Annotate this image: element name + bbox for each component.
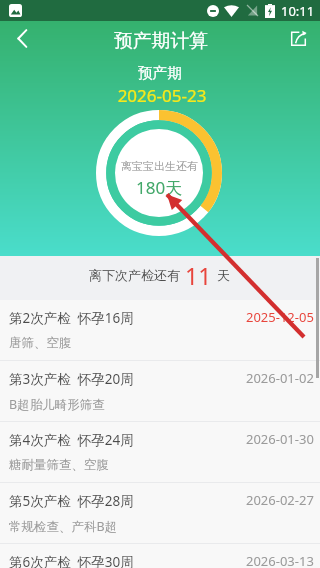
staticText: 2026-05-23 [2,84,320,107]
staticText: 第6次产检 怀孕30周 [9,553,134,568]
staticText: 2026-01-02 [246,369,314,387]
button[interactable]: Back [0,21,44,56]
staticText: 第4次产检 怀孕24周 [9,431,134,449]
staticText: 唐筛、空腹 [9,335,72,351]
staticText: 常规检查、产科B超 [9,518,118,535]
staticText: 第2次产检 怀孕16周 [9,309,134,327]
staticText: 2026-02-27 [246,491,314,509]
staticText: 预产期 [0,64,320,83]
button[interactable]: 第3次产检 怀孕20周 [0,361,320,421]
staticText: 糖耐量筛查、空腹 [9,457,109,473]
staticText: 预产期计算 [114,29,208,53]
staticText: 第5次产检 怀孕28周 [9,492,134,510]
staticText: B超胎儿畸形筛查 [9,396,105,413]
staticText: 2026-01-30 [246,430,314,448]
button[interactable]: Share [276,21,320,56]
staticText: 10:11 [281,2,315,20]
button[interactable]: 第4次产检 怀孕24周 [0,422,320,482]
staticText: 第3次产检 怀孕20周 [9,370,134,388]
staticText: 2025-12-05 [246,308,314,326]
staticText: 离下次产检还有 [89,267,180,283]
staticText: 2026-03-13 [246,552,314,568]
button[interactable]: 第6次产检 怀孕30周 [0,544,320,568]
staticText: 11 [185,260,212,291]
button[interactable]: 第5次产检 怀孕28周 [0,483,320,543]
button[interactable]: 第2次产检 怀孕16周 [0,300,320,360]
staticText: 天 [217,267,230,283]
staticText: 离宝宝出生还有 [121,159,198,173]
staticText: 180天 [136,176,183,199]
